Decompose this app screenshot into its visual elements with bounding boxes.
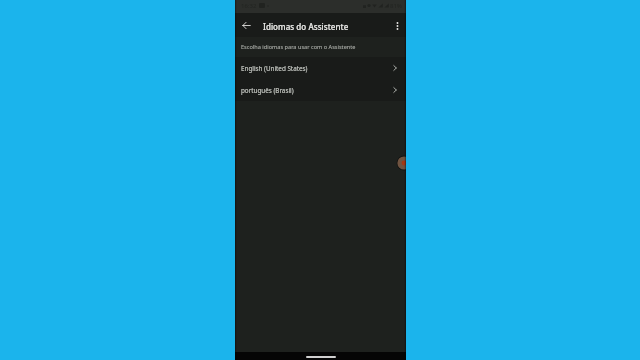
button[interactable]: português (Brasil): [235, 79, 406, 101]
staticText: English (United States): [241, 64, 308, 73]
staticText: português (Brasil): [241, 86, 294, 95]
button[interactable]: More options: [386, 13, 406, 37]
staticText: Escolha idiomas para usar com o Assisten…: [241, 43, 356, 51]
button[interactable]: Back: [235, 13, 257, 37]
button[interactable]: English (United States): [235, 57, 406, 79]
staticText: Idiomas do Assistente: [263, 21, 349, 32]
